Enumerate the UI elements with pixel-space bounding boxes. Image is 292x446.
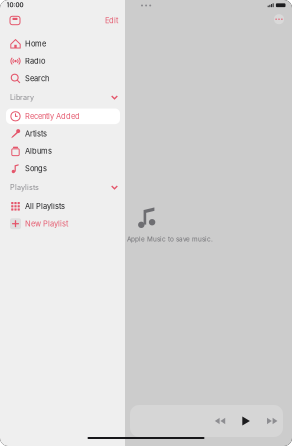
button[interactable]: Previous: [212, 415, 228, 427]
staticText: Recently Added: [25, 112, 80, 121]
button[interactable]: Edit: [103, 14, 120, 27]
staticText: Apple Music to save music.: [127, 235, 213, 243]
button[interactable]: Artists: [0, 125, 125, 142]
staticText: Songs: [25, 164, 47, 173]
staticText: Library: [10, 93, 34, 102]
staticText: Albums: [25, 147, 52, 156]
button[interactable]: Collapse Playlists: [109, 183, 120, 192]
button[interactable]: Next: [264, 415, 280, 427]
staticText: Home: [25, 39, 46, 48]
button[interactable]: All Playlists: [0, 198, 125, 215]
button[interactable]: Home: [0, 35, 125, 52]
staticText: Playlists: [10, 183, 39, 192]
staticText: 10:00: [6, 1, 23, 9]
button[interactable]: Recently Added: [0, 108, 125, 125]
button[interactable]: Collapse Library: [109, 93, 120, 102]
button[interactable]: Hide Sidebar: [8, 14, 22, 27]
button[interactable]: New Playlist: [0, 215, 125, 232]
staticText: All Playlists: [25, 202, 65, 211]
button[interactable]: Search: [0, 70, 125, 87]
button[interactable]: Play: [240, 414, 252, 428]
staticText: Artists: [25, 129, 47, 138]
button[interactable]: More: [274, 14, 284, 24]
button[interactable]: Radio: [0, 52, 125, 70]
staticText: Edit: [105, 16, 118, 25]
staticText: Search: [25, 74, 49, 83]
staticText: Radio: [25, 57, 45, 66]
staticText: New Playlist: [25, 219, 68, 228]
button[interactable]: Songs: [0, 160, 125, 177]
button[interactable]: Albums: [0, 142, 125, 160]
